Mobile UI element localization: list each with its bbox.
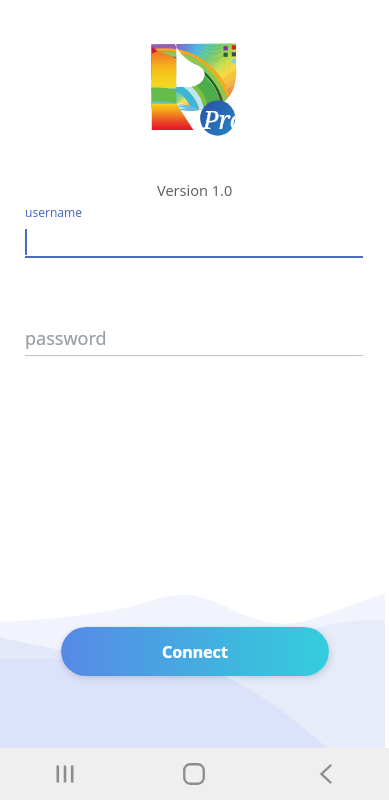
button[interactable]: Home: [129, 748, 259, 800]
staticText: Connect: [162, 641, 228, 663]
button[interactable]: username: [25, 204, 363, 258]
staticText: username: [25, 204, 83, 220]
button[interactable]: Back: [259, 748, 389, 800]
button[interactable]: Connect: [61, 627, 329, 676]
button[interactable]: Recent apps: [0, 748, 129, 800]
staticText: Pro: [203, 102, 245, 136]
button[interactable]: password: [25, 326, 363, 356]
staticText: Version 1.0: [157, 180, 233, 200]
staticText: password: [25, 326, 107, 351]
